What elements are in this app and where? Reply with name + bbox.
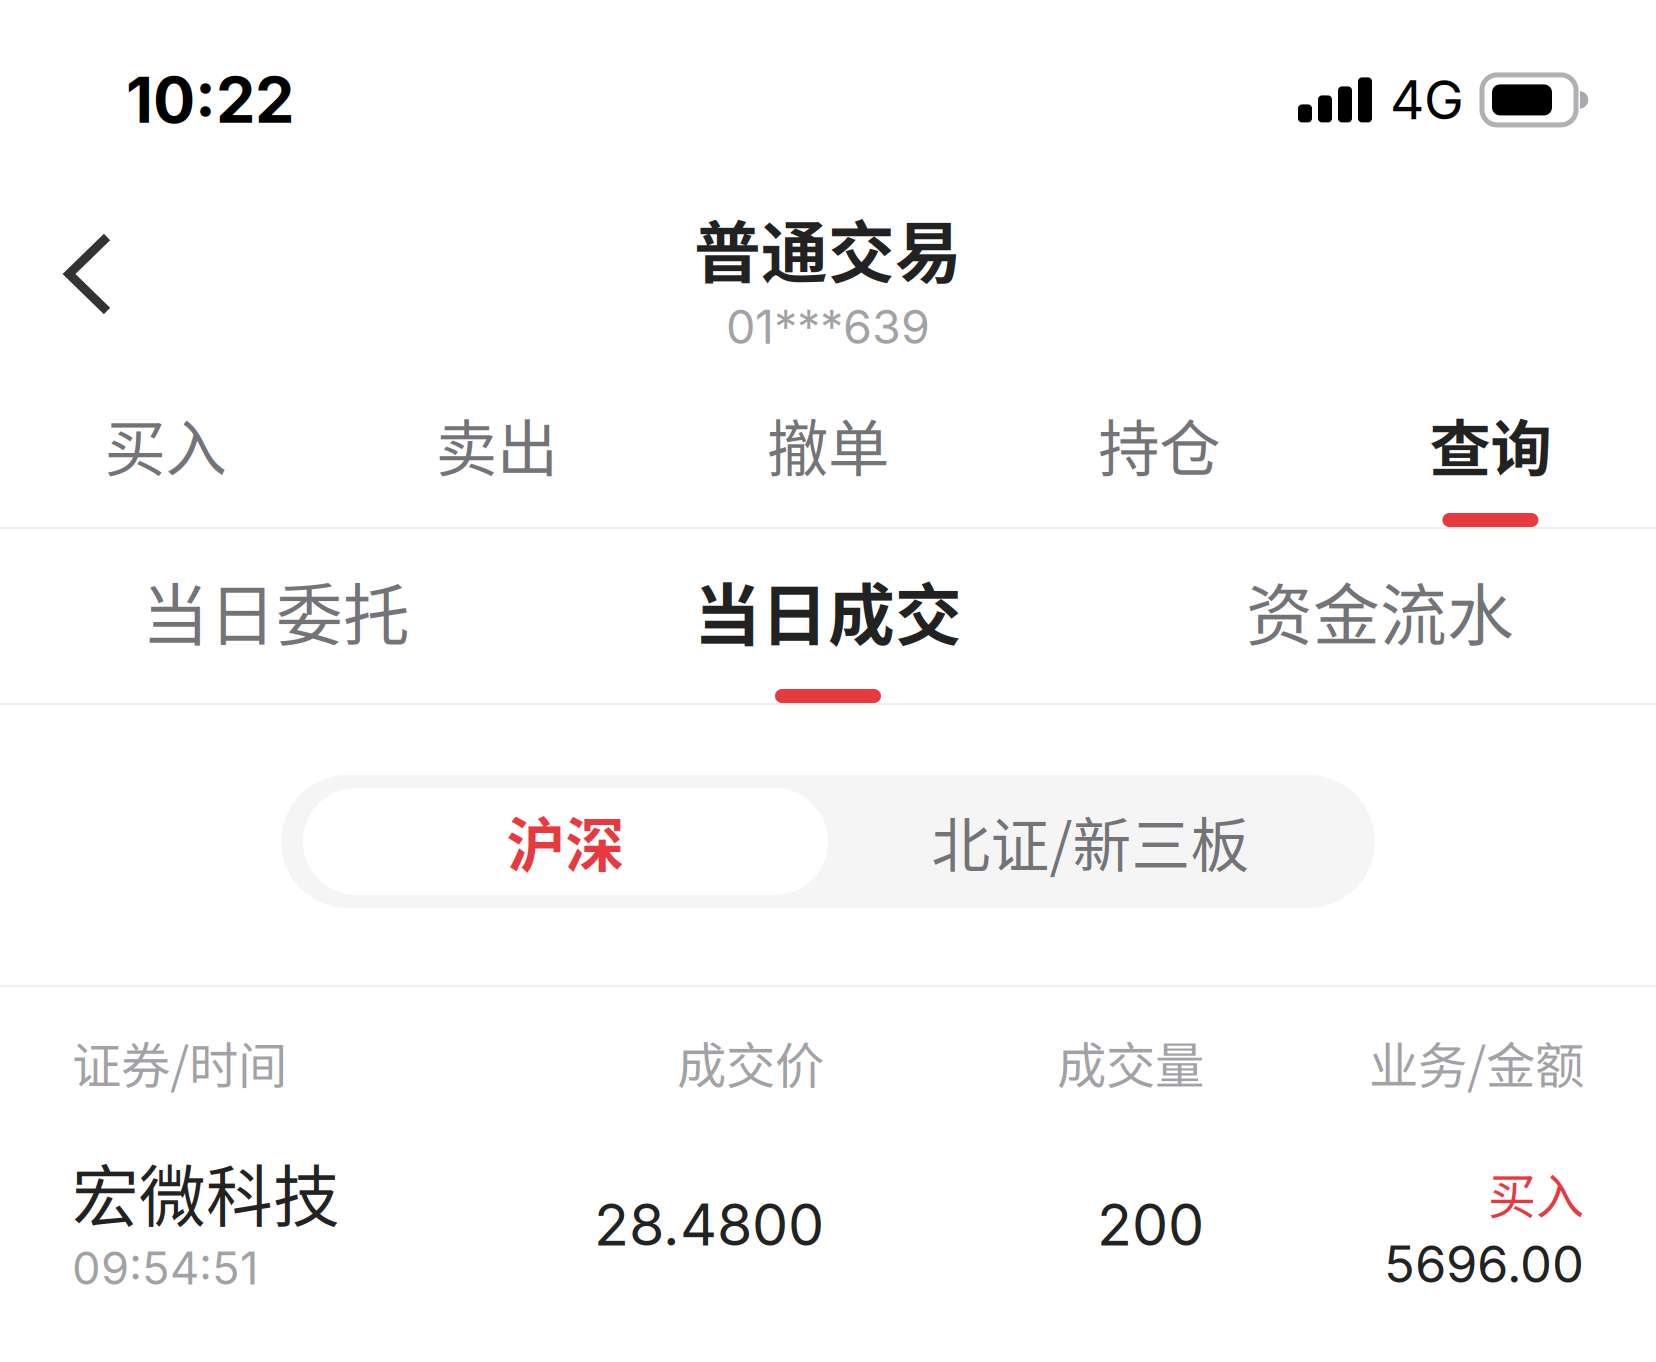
- button[interactable]: 当日委托: [0, 529, 552, 703]
- staticText: 宏微科技: [72, 1144, 340, 1240]
- staticText: 撤单: [767, 400, 889, 489]
- staticText: 当日成交: [694, 562, 962, 659]
- staticText: 当日委托: [142, 562, 410, 659]
- button[interactable]: 资金流水: [1104, 529, 1656, 703]
- button[interactable]: 买入: [0, 362, 331, 527]
- staticText: 01***639: [726, 298, 930, 355]
- button[interactable]: 撤单: [662, 362, 994, 527]
- staticText: 沪深: [506, 799, 624, 884]
- staticText: 成交价: [677, 1026, 824, 1098]
- button[interactable]: 卖出: [331, 362, 662, 527]
- staticText: 持仓: [1098, 400, 1220, 489]
- button[interactable]: 查询: [1325, 362, 1656, 527]
- staticText: 09:54:51: [72, 1240, 258, 1295]
- button[interactable]: 北证/新三板: [828, 788, 1353, 895]
- staticText: 北证/新三板: [931, 799, 1249, 884]
- button[interactable]: 持仓: [994, 362, 1325, 527]
- staticText: 5696.00: [1384, 1233, 1584, 1295]
- button[interactable]: Back: [0, 183, 164, 345]
- staticText: 成交量: [1057, 1026, 1204, 1098]
- staticText: 4G: [1390, 68, 1464, 132]
- staticText: 资金流水: [1246, 562, 1514, 659]
- button[interactable]: 宏微科技: [0, 1137, 1656, 1295]
- staticText: 买入: [1488, 1158, 1584, 1227]
- staticText: 普通交易: [694, 200, 962, 296]
- staticText: 查询: [1429, 400, 1551, 489]
- staticText: 买入: [105, 400, 227, 489]
- staticText: 卖出: [436, 400, 558, 489]
- button[interactable]: 当日成交: [552, 529, 1104, 703]
- button[interactable]: 沪深: [303, 788, 828, 895]
- staticText: 证券/时间: [72, 1026, 287, 1098]
- staticText: 10:22: [126, 62, 294, 138]
- staticText: 200: [1097, 1190, 1204, 1259]
- staticText: 业务/金额: [1369, 1026, 1584, 1098]
- staticText: 28.4800: [594, 1190, 824, 1259]
